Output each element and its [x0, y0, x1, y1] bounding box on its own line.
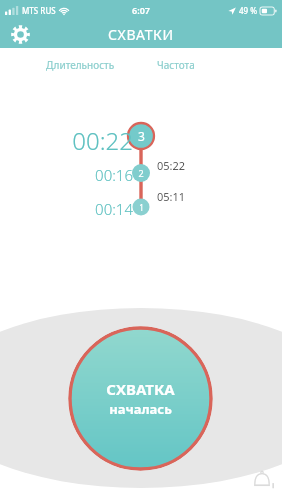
- staticText: 1: [139, 202, 144, 213]
- staticText: СХВАТКИ: [108, 25, 174, 44]
- button[interactable]: Notifications: [249, 468, 275, 494]
- staticText: 2: [138, 167, 144, 179]
- button[interactable]: Settings: [7, 21, 33, 47]
- staticText: 6:07: [132, 4, 150, 16]
- staticText: Длительность: [46, 58, 115, 72]
- staticText: СХВАТКА: [106, 379, 175, 399]
- staticText: 00:22: [28, 124, 133, 157]
- button[interactable]: СХВАТКА: [68, 326, 213, 471]
- staticText: 05:22: [157, 158, 186, 173]
- staticText: MTS RUS: [22, 5, 56, 16]
- staticText: 05:11: [157, 189, 186, 204]
- staticText: 00:16: [28, 165, 133, 185]
- staticText: 00:14: [28, 199, 133, 219]
- staticText: началась: [109, 400, 172, 418]
- staticText: 3: [138, 128, 145, 144]
- staticText: Частота: [157, 58, 195, 72]
- staticText: 49 %: [239, 5, 258, 16]
